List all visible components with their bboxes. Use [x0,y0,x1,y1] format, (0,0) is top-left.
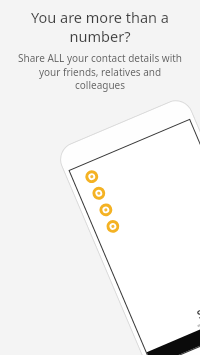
button[interactable]: S [185,301,200,329]
staticText: You are more than a number? [13,7,187,46]
staticText: S [194,305,200,322]
button[interactable]: App preview on phone [54,95,200,355]
staticText: Share ALL your contact details with your… [13,51,187,92]
